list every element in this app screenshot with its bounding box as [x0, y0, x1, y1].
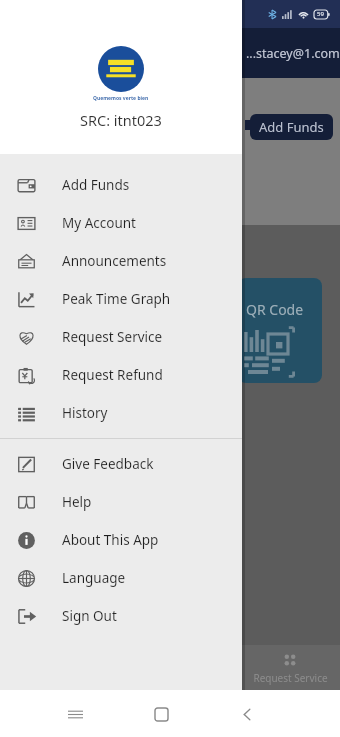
- button[interactable]: Sign Out: [0, 597, 242, 635]
- staticText: About This App: [62, 531, 159, 549]
- staticText: Language: [62, 569, 126, 587]
- staticText: QR Code: [246, 300, 304, 319]
- staticText: Help: [62, 493, 92, 511]
- staticText: ...stacey@1.com: [246, 45, 340, 62]
- button[interactable]: My Account: [0, 204, 242, 242]
- button[interactable]: Announcements: [0, 242, 242, 280]
- staticText: My Account: [62, 214, 136, 232]
- button[interactable]: Add Funds: [0, 166, 242, 204]
- button[interactable]: About This App: [0, 521, 242, 559]
- button[interactable]: Request Service: [252, 652, 328, 685]
- staticText: Sign Out: [62, 607, 117, 625]
- staticText: Request Service: [62, 328, 163, 346]
- button[interactable]: Peak Time Graph: [0, 280, 242, 318]
- staticText: Add Funds: [62, 176, 130, 194]
- button[interactable]: History: [0, 394, 242, 432]
- staticText: Peak Time Graph: [62, 290, 171, 308]
- staticText: SRC: itnt023: [80, 110, 162, 130]
- button[interactable]: Home: [141, 694, 181, 734]
- staticText: Give Feedback: [62, 455, 154, 473]
- button[interactable]: Give Feedback: [0, 445, 242, 483]
- button[interactable]: Recent apps: [55, 694, 95, 734]
- button[interactable]: Language: [0, 559, 242, 597]
- staticText: History: [62, 404, 108, 422]
- button[interactable]: Request Service: [0, 318, 242, 356]
- staticText: Request Service: [253, 671, 328, 685]
- staticText: Request Refund: [62, 366, 163, 384]
- button[interactable]: Request Refund: [0, 356, 242, 394]
- staticText: Quememos verte bien: [93, 95, 149, 102]
- staticText: 59: [317, 10, 324, 18]
- staticText: Add Funds: [259, 118, 324, 136]
- button[interactable]: Add Funds: [250, 114, 333, 140]
- button[interactable]: Back: [227, 694, 267, 734]
- button[interactable]: QR Code: [238, 278, 322, 383]
- button[interactable]: Help: [0, 483, 242, 521]
- staticText: Announcements: [62, 252, 167, 270]
